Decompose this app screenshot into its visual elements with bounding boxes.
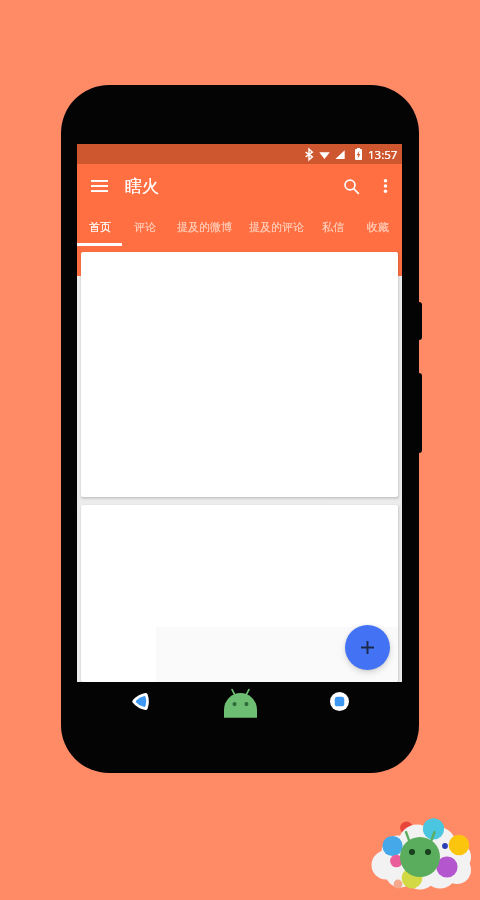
button[interactable] [81, 505, 398, 682]
button[interactable]: New post [345, 625, 390, 670]
button[interactable]: 提及的评论 [241, 214, 312, 246]
button[interactable]: 收藏 [353, 214, 402, 246]
button[interactable]: 评论 [122, 214, 168, 246]
button[interactable]: Recent apps [321, 683, 357, 719]
staticText: 评论 [134, 220, 156, 234]
button[interactable]: 首页 [77, 214, 122, 246]
button[interactable]: 私信 [312, 214, 353, 246]
button[interactable]: Back [123, 683, 159, 719]
staticText: 提及的评论 [249, 220, 304, 234]
staticText: 私信 [322, 220, 344, 234]
button[interactable]: Search [331, 164, 372, 208]
staticText: 首页 [89, 220, 111, 234]
button[interactable]: More options [370, 164, 400, 208]
button[interactable]: Open navigation drawer [77, 164, 122, 208]
staticText: 瞎火 [125, 176, 159, 197]
staticText: 收藏 [367, 220, 389, 234]
staticText: 13:57 [368, 147, 398, 163]
staticText: 提及的微博 [177, 220, 232, 234]
button[interactable]: 提及的微博 [168, 214, 241, 246]
button[interactable]: Home [221, 686, 259, 720]
